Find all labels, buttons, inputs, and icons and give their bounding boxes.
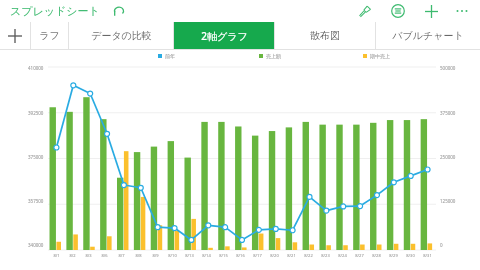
staticText: 8/23 bbox=[321, 253, 330, 258]
button[interactable]: Add bbox=[421, 1, 441, 21]
staticText: 375000 bbox=[440, 110, 456, 116]
staticText: 8/8 bbox=[135, 253, 142, 258]
staticText: 前年 bbox=[165, 53, 175, 59]
staticText: 8/31 bbox=[423, 253, 432, 258]
staticText: 340000 bbox=[28, 242, 44, 248]
staticText: 8/3 bbox=[85, 253, 92, 258]
staticText: 8/7 bbox=[118, 253, 125, 258]
staticText: 8/24 bbox=[338, 253, 347, 258]
staticText: バブルチャート bbox=[392, 29, 464, 42]
staticText: 375000 bbox=[28, 154, 44, 160]
staticText: 期中売上 bbox=[370, 53, 390, 59]
button[interactable]: Undo bbox=[109, 1, 129, 21]
staticText: 410000 bbox=[28, 65, 44, 71]
staticText: 500000 bbox=[440, 65, 456, 71]
button[interactable]: Add sheet bbox=[0, 22, 30, 49]
staticText: 8/14 bbox=[202, 253, 211, 258]
staticText: 8/1 bbox=[53, 253, 60, 258]
staticText: 250000 bbox=[440, 154, 456, 160]
button[interactable]: More options bbox=[452, 1, 472, 21]
staticText: ラフ bbox=[39, 29, 60, 42]
staticText: 8/6 bbox=[101, 253, 108, 258]
staticText: 散布図 bbox=[310, 29, 340, 42]
button[interactable]: データの比較 bbox=[69, 22, 173, 49]
staticText: 0 bbox=[440, 242, 443, 248]
staticText: 8/22 bbox=[304, 253, 313, 258]
staticText: 8/16 bbox=[236, 253, 245, 258]
staticText: 8/13 bbox=[185, 253, 194, 258]
staticText: 8/9 bbox=[152, 253, 159, 258]
button[interactable]: 2軸グラフ bbox=[174, 22, 274, 49]
staticText: 売上額 bbox=[266, 53, 281, 59]
staticText: 125000 bbox=[440, 198, 456, 204]
staticText: 8/27 bbox=[355, 253, 364, 258]
staticText: 8/21 bbox=[287, 253, 296, 258]
button[interactable]: Format paint bbox=[355, 1, 375, 21]
staticText: 8/28 bbox=[372, 253, 381, 258]
staticText: 392500 bbox=[28, 110, 44, 116]
staticText: データの比較 bbox=[91, 29, 152, 42]
staticText: 8/2 bbox=[69, 253, 76, 258]
button[interactable]: バブルチャート bbox=[376, 22, 480, 49]
staticText: 8/17 bbox=[253, 253, 262, 258]
staticText: 8/15 bbox=[219, 253, 228, 258]
staticText: 8/20 bbox=[270, 253, 279, 258]
staticText: 357500 bbox=[28, 198, 44, 204]
staticText: 2軸グラフ bbox=[201, 29, 248, 43]
button[interactable]: Text format bbox=[388, 1, 408, 21]
staticText: スプレッドシート bbox=[10, 4, 100, 18]
button[interactable]: ラフ bbox=[31, 22, 68, 49]
button[interactable]: 散布図 bbox=[275, 22, 375, 49]
staticText: 8/30 bbox=[406, 253, 415, 258]
staticText: 8/29 bbox=[389, 253, 398, 258]
staticText: 8/10 bbox=[168, 253, 177, 258]
